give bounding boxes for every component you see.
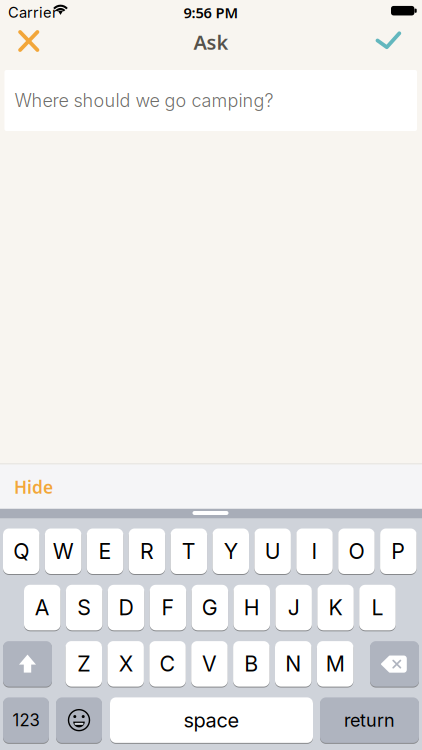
staticText: Ask: [193, 29, 228, 55]
button[interactable]: Q: [3, 528, 39, 574]
button[interactable]: O: [338, 528, 375, 574]
button[interactable]: space: [110, 697, 313, 743]
button[interactable]: N: [275, 641, 311, 687]
staticText: Carrier: [8, 4, 58, 21]
staticText: 123: [12, 710, 39, 730]
staticText: Hide: [14, 475, 53, 498]
button[interactable]: E: [87, 528, 123, 574]
button[interactable]: U: [254, 528, 291, 574]
button[interactable]: Question text field: [4, 70, 417, 131]
staticText: N: [285, 651, 301, 677]
staticText: X: [119, 651, 133, 677]
staticText: L: [371, 595, 383, 620]
button[interactable]: Submit: [369, 21, 409, 61]
button[interactable]: Close: [8, 21, 48, 61]
button[interactable]: K: [317, 585, 354, 630]
button[interactable]: Y: [212, 528, 249, 574]
staticText: H: [244, 595, 260, 620]
staticText: S: [77, 595, 91, 620]
staticText: 9:56 PM: [183, 3, 238, 22]
staticText: return: [344, 709, 395, 731]
staticText: I: [312, 538, 318, 564]
button[interactable]: G: [192, 585, 228, 630]
staticText: J: [288, 595, 300, 620]
button[interactable]: L: [359, 585, 396, 630]
staticText: W: [53, 538, 74, 564]
button[interactable]: W: [45, 528, 81, 574]
staticText: U: [265, 538, 281, 564]
button[interactable]: V: [191, 641, 228, 687]
button[interactable]: S: [66, 585, 102, 630]
button[interactable]: I: [296, 528, 333, 574]
staticText: E: [98, 538, 111, 564]
button[interactable]: Emoji: [56, 697, 102, 743]
button[interactable]: B: [233, 641, 270, 687]
staticText: space: [183, 708, 239, 732]
staticText: A: [35, 595, 50, 620]
staticText: Y: [224, 538, 238, 564]
button[interactable]: D: [108, 585, 144, 630]
button[interactable]: H: [233, 585, 270, 630]
button[interactable]: Hide: [0, 465, 100, 509]
staticText: R: [140, 538, 154, 564]
button[interactable]: X: [107, 641, 144, 687]
button[interactable]: P: [380, 528, 417, 574]
button[interactable]: Delete: [370, 641, 419, 687]
staticText: T: [182, 538, 196, 564]
staticText: G: [202, 595, 218, 620]
staticText: M: [326, 651, 345, 677]
button[interactable]: J: [275, 585, 312, 630]
button[interactable]: T: [171, 528, 207, 574]
button[interactable]: Shift: [3, 641, 52, 687]
staticText: P: [391, 538, 405, 564]
staticText: O: [348, 538, 364, 564]
staticText: Q: [13, 538, 29, 564]
button[interactable]: C: [149, 641, 186, 687]
staticText: D: [118, 595, 133, 620]
staticText: Z: [77, 651, 90, 677]
staticText: K: [329, 595, 343, 620]
button[interactable]: A: [24, 585, 60, 630]
button[interactable]: R: [129, 528, 165, 574]
button[interactable]: M: [317, 641, 353, 687]
staticText: C: [160, 651, 176, 677]
staticText: B: [244, 651, 258, 677]
staticText: F: [161, 595, 174, 620]
staticText: Where should we go camping?: [14, 90, 273, 111]
staticText: V: [202, 651, 217, 677]
button[interactable]: 123: [3, 697, 49, 743]
button[interactable]: F: [150, 585, 186, 630]
button[interactable]: Z: [65, 641, 102, 687]
button[interactable]: return: [320, 697, 419, 743]
